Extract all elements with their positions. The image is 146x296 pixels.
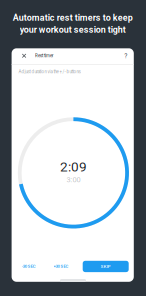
staticText: Automatic rest timers to keep [13, 12, 133, 23]
staticText: 2:09 [60, 159, 87, 175]
button[interactable]: Help [119, 49, 132, 62]
staticText: Rest timer [35, 53, 53, 58]
staticText: 3:00 [66, 175, 80, 184]
button[interactable]: Close [17, 48, 32, 63]
button[interactable]: SKIP [83, 261, 129, 272]
staticText: -30 SEC [22, 264, 36, 269]
button[interactable]: -30 SEC [16, 259, 42, 273]
button[interactable]: +30 SEC [48, 259, 74, 273]
staticText: your workout session tight [20, 24, 126, 35]
staticText: Adjust duration via the +/- buttons. [18, 69, 81, 74]
staticText: +30 SEC [53, 264, 68, 269]
staticText: SKIP [101, 264, 111, 269]
staticText: ? [124, 52, 127, 60]
